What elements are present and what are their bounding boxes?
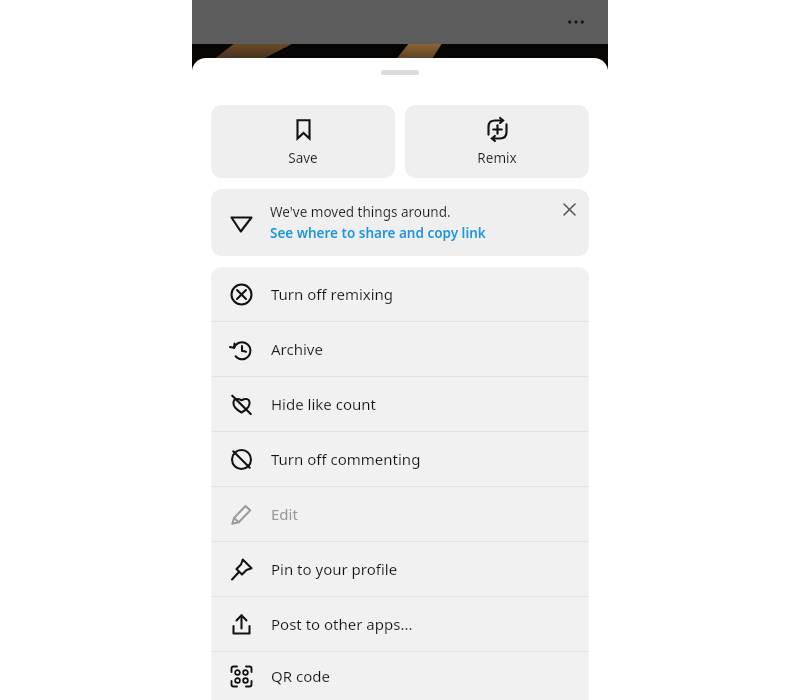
button[interactable]: Save: [211, 105, 395, 178]
button[interactable]: Pin to your profile: [211, 542, 589, 596]
staticText: See where to share and copy link: [270, 224, 486, 242]
staticText: Hide like count: [271, 394, 376, 414]
staticText: QR code: [271, 666, 330, 686]
button[interactable]: More options: [560, 6, 592, 38]
button[interactable]: Edit: [211, 487, 589, 541]
staticText: Pin to your profile: [271, 559, 398, 579]
staticText: Save: [288, 149, 318, 167]
staticText: Edit: [271, 504, 298, 524]
button[interactable]: Remix: [405, 105, 589, 178]
button[interactable]: Post to other apps...: [211, 597, 589, 651]
staticText: Turn off remixing: [271, 284, 394, 304]
button[interactable]: Turn off remixing: [211, 267, 589, 321]
button[interactable]: QR code: [211, 652, 589, 700]
button[interactable]: Dismiss: [555, 195, 583, 223]
button[interactable]: Turn off commenting: [211, 432, 589, 486]
staticText: Post to other apps...: [271, 614, 413, 634]
button[interactable]: Archive: [211, 322, 589, 376]
button[interactable]: We've moved things around.: [211, 189, 589, 256]
staticText: Archive: [271, 339, 323, 359]
button[interactable]: Hide like count: [211, 377, 589, 431]
staticText: We've moved things around.: [270, 203, 451, 221]
staticText: Turn off commenting: [271, 449, 421, 469]
staticText: Remix: [477, 149, 517, 167]
